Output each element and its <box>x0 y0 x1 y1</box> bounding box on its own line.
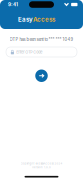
staticText: Copyright © EasyAccess 2024 <box>20 162 62 165</box>
staticText: OTP has been sent to *** *** 1049 <box>9 37 73 42</box>
staticText: Easy <box>18 16 33 23</box>
staticText: Access <box>33 16 55 23</box>
staticText: 9:41 <box>8 2 18 7</box>
button[interactable]: Submit OTP code <box>35 69 48 82</box>
staticText: Enter OTP Code <box>16 50 42 54</box>
staticText: Version 1.0.0 <box>32 166 51 169</box>
button[interactable]: Enter OTP Code <box>6 47 77 57</box>
